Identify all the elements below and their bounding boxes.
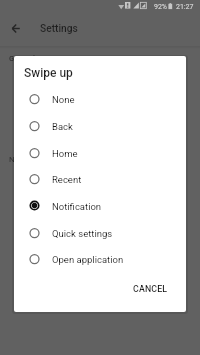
staticText: None [52, 94, 75, 105]
button[interactable]: Open application [14, 245, 186, 272]
staticText: 92% [154, 3, 167, 11]
staticText: Recent [52, 174, 82, 185]
button[interactable]: Back [8, 20, 25, 37]
button[interactable]: None [14, 85, 186, 112]
staticText: Notification [52, 201, 102, 212]
staticText: Home [52, 148, 78, 159]
staticText: General [9, 54, 35, 63]
button[interactable]: Home [14, 139, 186, 166]
staticText: Navigation bar [9, 155, 61, 164]
staticText: Swipe up [24, 66, 73, 80]
staticText: 21:27 [176, 3, 194, 11]
staticText: CANCEL [133, 284, 168, 294]
staticText: Settings [40, 23, 78, 35]
staticText: Quick settings [52, 228, 113, 239]
button[interactable]: Recent [14, 165, 186, 192]
staticText: Back [52, 121, 73, 132]
button[interactable]: Notification [14, 192, 186, 219]
button[interactable]: CANCEL [118, 279, 183, 299]
staticText: Open application [52, 254, 124, 265]
button[interactable]: Back [14, 112, 186, 139]
button[interactable]: Quick settings [14, 219, 186, 246]
